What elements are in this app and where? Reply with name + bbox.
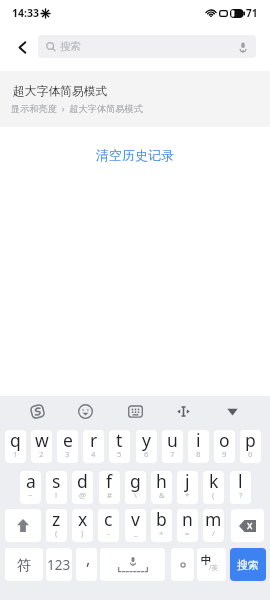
staticText: 显示和亮度 › 超大字体简易模式 <box>11 102 143 115</box>
button[interactable]: x <box>72 509 93 542</box>
button[interactable]: j <box>177 471 198 504</box>
button[interactable]: Move cursor <box>173 401 194 422</box>
staticText: 搜索 <box>60 40 81 53</box>
button[interactable]: i <box>188 430 209 463</box>
button[interactable]: d <box>72 471 93 504</box>
staticText: 4 <box>91 449 96 460</box>
button[interactable]: g <box>125 471 146 504</box>
staticText: o <box>219 430 230 452</box>
staticText: v <box>131 509 140 531</box>
button[interactable]: Backspace <box>231 509 264 542</box>
staticText: 8 <box>196 449 201 460</box>
button[interactable]: 123 <box>46 548 72 581</box>
staticText: \ <box>134 490 137 501</box>
staticText: @ <box>79 490 87 501</box>
staticText: r <box>90 430 98 452</box>
staticText: d <box>77 471 88 493</box>
button[interactable]: 搜索 <box>230 548 266 581</box>
button[interactable]: y <box>136 430 157 463</box>
staticText: y <box>142 430 151 452</box>
staticText: & <box>159 490 165 501</box>
staticText: a <box>26 471 36 493</box>
staticText: = <box>185 528 190 539</box>
button[interactable]: z <box>46 509 67 542</box>
staticText: 2 <box>39 449 44 460</box>
button[interactable]: e <box>57 430 78 463</box>
staticText: + <box>159 528 164 539</box>
staticText: 超大字体简易模式 <box>13 84 108 99</box>
button[interactable]: s <box>46 471 67 504</box>
button[interactable]: Hide keyboard <box>222 401 243 422</box>
button[interactable]: v <box>125 509 146 542</box>
staticText: x <box>78 509 88 531</box>
staticText: - <box>107 528 110 539</box>
staticText: 0 <box>248 449 253 460</box>
button[interactable]: Keyboard layout <box>125 401 146 422</box>
button[interactable]: Chinese / English <box>197 548 226 581</box>
staticText: f <box>106 471 113 493</box>
staticText: 符 <box>17 556 32 574</box>
button[interactable]: 超大字体简易模式 <box>0 71 270 127</box>
button[interactable]: Shift <box>5 509 41 542</box>
staticText: j <box>185 471 190 493</box>
button[interactable]: Voice search <box>235 39 251 55</box>
button[interactable]: k <box>203 471 224 504</box>
button[interactable]: Emoji <box>75 401 96 422</box>
staticText: i <box>196 430 201 452</box>
staticText: / <box>212 528 215 539</box>
button[interactable]: w <box>31 430 52 463</box>
staticText: ! <box>55 490 58 501</box>
staticText: 71 <box>246 6 258 20</box>
staticText: e <box>63 430 73 452</box>
button[interactable]: a <box>20 471 41 504</box>
staticText: 搜索 <box>237 558 259 572</box>
button[interactable]: m <box>203 509 224 542</box>
button[interactable]: r <box>83 430 104 463</box>
button[interactable]: u <box>162 430 183 463</box>
staticText: ( <box>55 528 58 539</box>
button[interactable]: Back <box>11 36 33 58</box>
staticText: u <box>167 430 178 452</box>
button[interactable]: 符 <box>5 548 43 581</box>
staticText: h <box>156 471 167 493</box>
staticText: 清空历史记录 <box>96 147 174 163</box>
button[interactable]: Space <box>100 548 165 581</box>
button[interactable]: t <box>109 430 130 463</box>
staticText: m <box>205 509 222 531</box>
button[interactable]: , <box>76 548 97 581</box>
button[interactable]: 搜索 <box>38 35 256 58</box>
button[interactable]: Sogou input <box>27 401 48 422</box>
staticText: ~ <box>28 490 33 501</box>
button[interactable]: p <box>240 430 261 463</box>
staticText: ? <box>239 490 243 501</box>
staticText: 9 <box>222 449 227 460</box>
button[interactable]: l <box>230 471 251 504</box>
staticText: c <box>104 509 113 531</box>
staticText: * <box>185 490 190 501</box>
button[interactable]: o <box>214 430 235 463</box>
button[interactable]: q <box>5 430 26 463</box>
staticText: 6 <box>144 449 149 460</box>
button[interactable] <box>171 548 194 581</box>
staticText: 7 <box>170 449 175 460</box>
staticText: # <box>107 490 113 501</box>
button[interactable]: h <box>151 471 172 504</box>
staticText: p <box>245 430 256 452</box>
button[interactable]: c <box>98 509 119 542</box>
staticText: /英 <box>209 563 218 572</box>
staticText: 3 <box>65 449 70 460</box>
staticText: 14:33 <box>12 6 39 20</box>
staticText: 123 <box>47 556 71 574</box>
staticText: b <box>156 509 167 531</box>
button[interactable]: b <box>151 509 172 542</box>
staticText: 中 <box>201 554 212 568</box>
staticText: z <box>52 509 61 531</box>
staticText: q <box>10 430 21 452</box>
button[interactable]: f <box>99 471 120 504</box>
staticText: n <box>182 509 193 531</box>
button[interactable]: 清空历史记录 <box>84 142 186 168</box>
staticText: l <box>238 471 243 493</box>
staticText: , <box>86 548 91 570</box>
staticText: g <box>130 471 141 493</box>
button[interactable]: n <box>177 509 198 542</box>
